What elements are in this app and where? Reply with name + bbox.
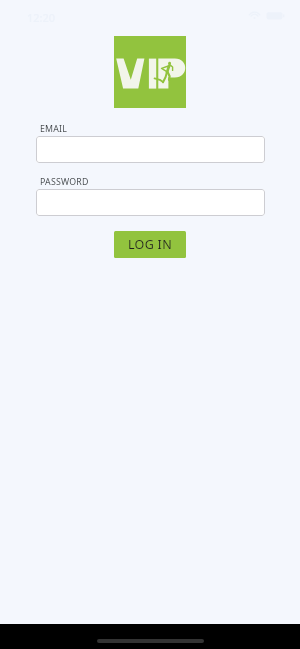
- button[interactable]: LOG IN: [114, 231, 186, 258]
- staticText: PASSWORD: [40, 176, 89, 188]
- staticText: EMAIL: [40, 123, 68, 135]
- button[interactable]: Password input field: [36, 189, 265, 216]
- other: VIP logo: [114, 36, 186, 108]
- staticText: LOG IN: [128, 236, 172, 253]
- button[interactable]: Email input field: [36, 136, 265, 163]
